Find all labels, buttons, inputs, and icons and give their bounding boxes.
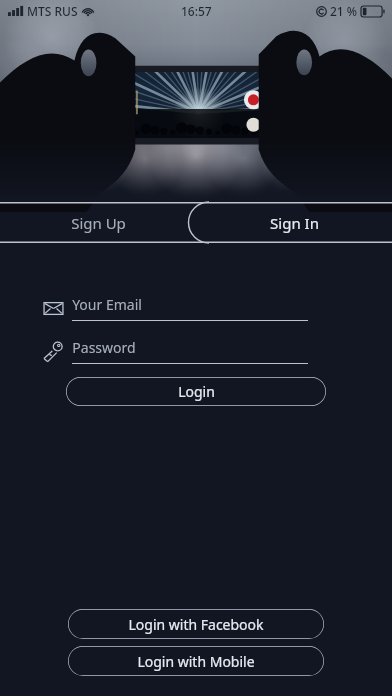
button[interactable]: Sign Up [0, 202, 196, 243]
staticText: MTS RUS [27, 3, 78, 19]
staticText: Sign In [270, 213, 319, 233]
other: Password [40, 338, 66, 364]
button[interactable]: Login [66, 377, 326, 406]
staticText: Sign Up [71, 213, 126, 233]
staticText: Login with Facebook [128, 615, 264, 634]
button[interactable]: Login with Mobile [68, 646, 324, 676]
staticText: 21 % [330, 3, 358, 19]
staticText: Your Email [72, 295, 142, 314]
other: Email [40, 295, 66, 321]
staticText: Login with Mobile [137, 652, 255, 671]
staticText: Login [178, 382, 215, 401]
button[interactable]: Password [40, 336, 308, 366]
button[interactable]: Email [40, 293, 308, 323]
staticText: Password [72, 338, 136, 357]
button[interactable]: Login with Facebook [68, 609, 324, 639]
staticText: 16:57 [181, 3, 212, 19]
button[interactable]: Sign In [196, 202, 392, 243]
